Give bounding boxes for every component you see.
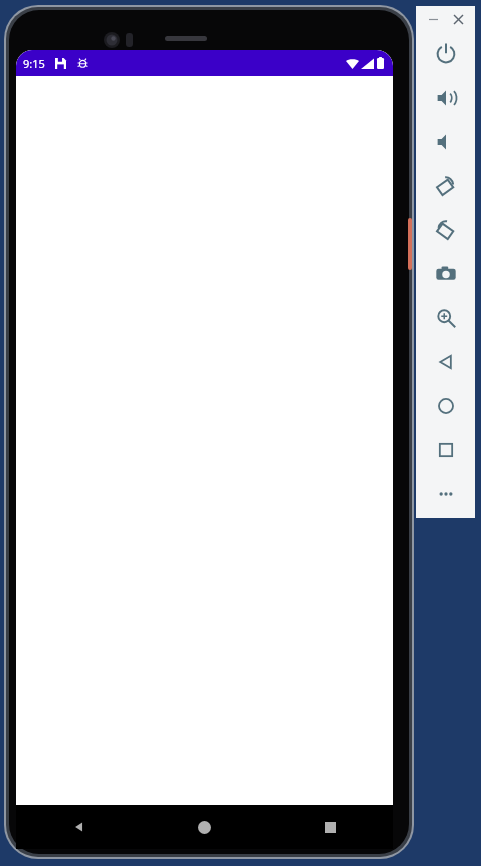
button[interactable]: Minimize <box>424 10 442 28</box>
button[interactable]: Home <box>141 805 267 849</box>
button[interactable]: Zoom <box>416 296 475 340</box>
button[interactable]: More <box>416 472 475 516</box>
button[interactable]: Volume down <box>416 120 475 164</box>
button[interactable]: Back <box>16 805 141 849</box>
button[interactable]: Home <box>416 384 475 428</box>
button[interactable]: Close <box>449 10 467 28</box>
staticText: 9:15 <box>23 56 45 71</box>
button[interactable]: Rotate left <box>416 164 475 208</box>
button[interactable]: Recent apps <box>267 805 393 849</box>
button[interactable]: Rotate right <box>416 208 475 252</box>
button[interactable]: Take screenshot <box>416 252 475 296</box>
button[interactable]: Overview <box>416 428 475 472</box>
button[interactable]: Volume up <box>416 76 475 120</box>
button[interactable]: Back <box>416 340 475 384</box>
button[interactable]: Power <box>416 32 475 76</box>
button[interactable]: Power <box>408 218 412 270</box>
